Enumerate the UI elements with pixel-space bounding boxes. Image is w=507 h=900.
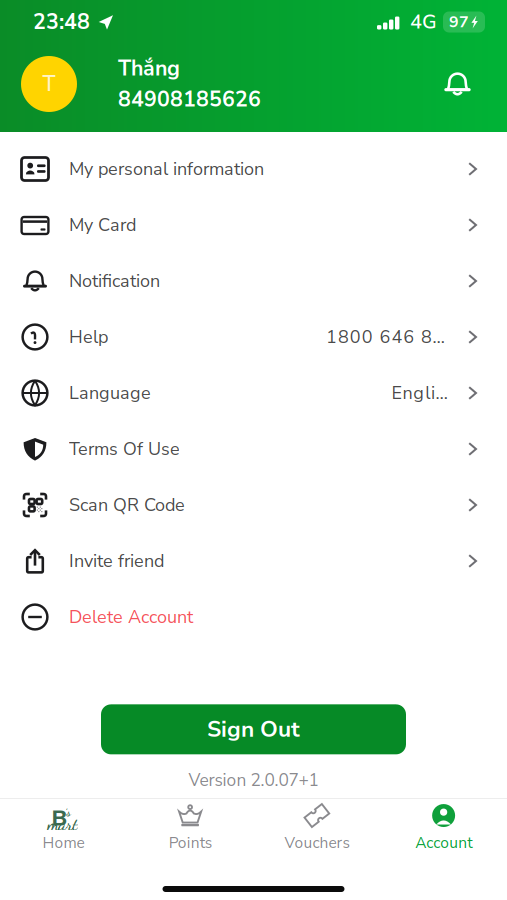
staticText: Version 2.0.07+1 <box>188 768 318 792</box>
button[interactable]: Help <box>0 309 507 365</box>
button[interactable]: Sign Out <box>101 704 406 754</box>
button[interactable]: Terms Of Use <box>0 421 507 477</box>
button[interactable]: Notifications <box>435 61 490 106</box>
button[interactable]: Points <box>127 795 254 858</box>
button[interactable]: My Card <box>0 197 507 253</box>
button[interactable]: Notification <box>0 253 507 309</box>
button[interactable]: Scan QR Code <box>0 477 507 533</box>
staticText: My personal information <box>69 157 264 181</box>
staticText: 84908185626 <box>118 85 261 114</box>
staticText: English <box>391 381 455 405</box>
staticText: Terms Of Use <box>69 437 180 461</box>
staticText: Invite friend <box>69 549 164 573</box>
button[interactable]: Account <box>380 795 507 858</box>
button[interactable]: My personal information <box>0 141 507 197</box>
staticText: Sign Out <box>207 714 300 745</box>
button[interactable]: Vouchers <box>253 795 380 858</box>
button[interactable]: Delete Account <box>0 589 507 645</box>
staticText: My Card <box>69 213 136 237</box>
staticText: Vouchers <box>284 832 349 853</box>
staticText: Help <box>69 325 108 349</box>
staticText: Notification <box>69 269 160 293</box>
staticText: Delete Account <box>69 605 193 629</box>
staticText: 4G <box>410 8 437 36</box>
staticText: Account <box>415 832 472 853</box>
staticText: 23:48 <box>33 7 90 37</box>
staticText: Points <box>169 832 212 853</box>
staticText: Thắng <box>118 54 180 83</box>
staticText: Language <box>69 381 151 405</box>
button[interactable]: Invite friend <box>0 533 507 589</box>
staticText: 97 <box>449 11 469 33</box>
staticText: T <box>42 69 55 99</box>
staticText: 1800 646 878 <box>326 325 455 349</box>
staticText: B <box>51 802 67 833</box>
staticText: Home <box>42 832 84 853</box>
button[interactable]: B <box>0 795 127 858</box>
staticText: Scan QR Code <box>69 493 185 517</box>
staticText: 's <box>64 805 70 820</box>
button[interactable]: Language <box>0 365 507 421</box>
staticText: mart <box>47 813 77 834</box>
